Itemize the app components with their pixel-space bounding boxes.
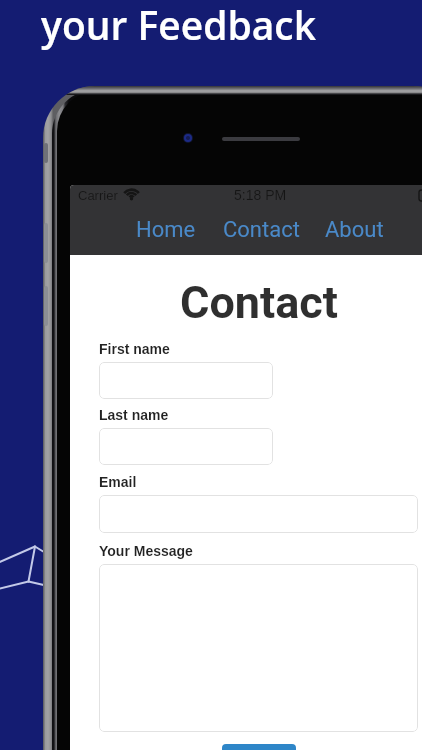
button[interactable] (99, 362, 273, 399)
staticText: your Feedback (41, 0, 316, 51)
button[interactable]: Contact (221, 209, 302, 251)
staticText: 5:18 PM (234, 187, 287, 203)
staticText: Contact (223, 217, 300, 243)
button[interactable]: About (323, 209, 386, 251)
button[interactable]: Home (134, 209, 198, 251)
staticText: Contact (70, 276, 422, 329)
staticText: Last name (99, 407, 169, 423)
button[interactable] (99, 564, 418, 732)
staticText: Home (136, 217, 196, 243)
staticText: First name (99, 341, 170, 357)
staticText: About (325, 217, 384, 243)
staticText: Your Message (99, 543, 193, 559)
staticText: Email (99, 474, 137, 490)
button[interactable] (99, 495, 418, 533)
button[interactable] (99, 428, 273, 465)
staticText: Carrier (78, 188, 118, 203)
button[interactable]: Send (222, 744, 296, 750)
